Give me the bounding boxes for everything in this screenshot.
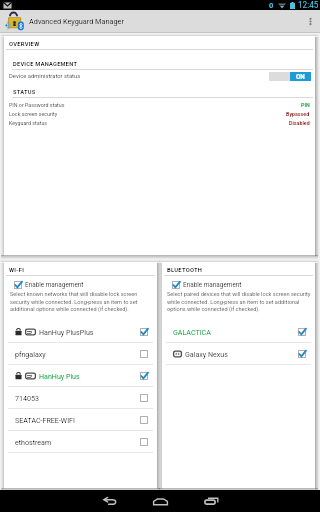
staticText: HanHuy Plus (39, 372, 80, 380)
button[interactable]: GALACTICA (162, 321, 315, 342)
staticText: STATUS (13, 89, 36, 96)
staticText: Enable management (183, 281, 242, 289)
staticText: ON (296, 73, 305, 80)
button[interactable]: Enable management (162, 278, 315, 291)
staticText: Select known networks that will disable … (10, 291, 142, 312)
button[interactable]: Back (84, 490, 135, 512)
button[interactable]: HanHuy Plus (4, 365, 157, 386)
staticText: Advanced Keyguard Manager (29, 17, 124, 26)
staticText: Galaxy Nexus (185, 350, 228, 358)
button[interactable]: PIN or Password status (4, 100, 315, 109)
staticText: Enable management (25, 281, 84, 289)
staticText: PIN (301, 102, 310, 108)
staticText: Lock screen security (9, 111, 58, 117)
button[interactable]: Enable management (4, 278, 157, 291)
button[interactable]: Home (135, 490, 186, 512)
staticText: PIN or Password status (9, 102, 65, 108)
staticText: GALACTICA (173, 328, 211, 336)
staticText: HanHuy PlusPlus (39, 328, 94, 336)
button[interactable]: Device administrator toggle (269, 72, 311, 81)
button[interactable]: Keyguard status (4, 118, 315, 127)
staticText: BLUETOOTH (167, 267, 203, 274)
button[interactable]: HanHuy PlusPlus (4, 321, 157, 342)
button[interactable]: pfngalaxy (4, 343, 157, 364)
staticText: Device administrator status (9, 73, 81, 80)
staticText: pfngalaxy (15, 350, 46, 358)
staticText: Keyguard status (9, 120, 48, 126)
staticText: 714053 (15, 394, 39, 402)
staticText: WI-FI (9, 267, 25, 274)
staticText: Select paired devices that will disable … (167, 291, 314, 312)
staticText: 12:45 (298, 0, 319, 10)
button[interactable]: SEATAC-FREE-WIFI (4, 409, 157, 430)
staticText: ethostream (15, 438, 52, 446)
staticText: Disabled (289, 120, 310, 126)
button[interactable]: Galaxy Nexus (162, 343, 315, 364)
button[interactable]: Recent apps (186, 490, 237, 512)
staticText: DEVICE MANAGEMENT (13, 61, 78, 68)
button[interactable]: Device administrator status (4, 70, 315, 82)
staticText: OVERVIEW (9, 41, 40, 48)
staticText: Bypassed (286, 111, 310, 117)
staticText: SEATAC-FREE-WIFI (15, 416, 75, 424)
button[interactable]: 714053 (4, 387, 157, 408)
button[interactable]: Lock screen security (4, 109, 315, 118)
button[interactable]: More options (300, 10, 320, 32)
staticText: 0 (269, 1, 274, 10)
button[interactable]: ethostream (4, 431, 157, 452)
